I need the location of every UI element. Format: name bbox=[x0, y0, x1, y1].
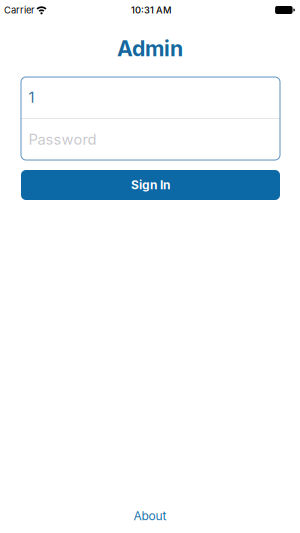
staticText: 10:31 AM bbox=[131, 4, 172, 15]
staticText: Sign In bbox=[131, 178, 170, 192]
staticText: Admin bbox=[117, 36, 183, 61]
button[interactable]: About bbox=[133, 509, 166, 523]
staticText: Password bbox=[28, 131, 96, 148]
button[interactable]: Password bbox=[21, 119, 280, 160]
staticText: About bbox=[133, 509, 166, 523]
staticText: 1 bbox=[28, 89, 34, 106]
button[interactable]: Sign In bbox=[21, 170, 280, 200]
staticText: Carrier bbox=[4, 4, 35, 15]
button[interactable]: 1 bbox=[21, 77, 280, 118]
